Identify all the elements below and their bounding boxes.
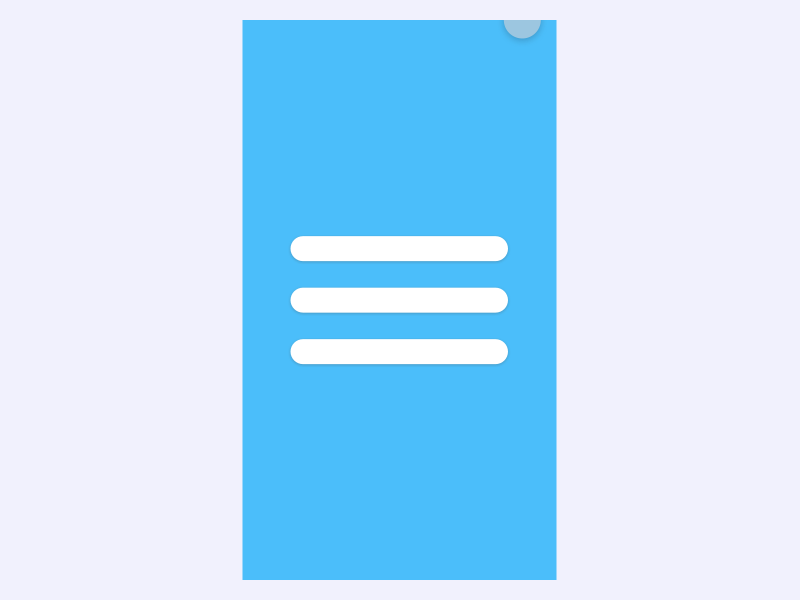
button[interactable]: Menu	[291, 236, 508, 364]
button[interactable]: Profile	[504, 20, 541, 57]
